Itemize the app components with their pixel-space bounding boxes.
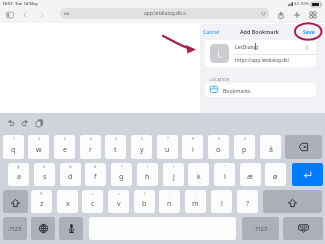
staticText: .?123 <box>254 225 268 232</box>
button[interactable]: æ <box>240 163 261 186</box>
button[interactable]: Bookmarks <box>205 83 316 97</box>
button[interactable]: Undo <box>8 120 15 126</box>
button[interactable]: Cancel <box>203 28 220 35</box>
staticText: 0 <box>244 137 246 141</box>
staticText: = <box>118 192 120 196</box>
staticText: l <box>224 172 226 182</box>
button[interactable]: % <box>31 190 52 213</box>
button[interactable]: Redo <box>21 120 28 126</box>
staticText: * <box>121 165 123 169</box>
staticText: n <box>167 199 172 209</box>
button[interactable]: Sidebar <box>6 11 14 19</box>
staticText: f <box>94 172 97 182</box>
staticText: 4G <box>294 1 300 7</box>
button[interactable]: 7 <box>157 135 178 159</box>
button[interactable]: Shift <box>263 190 322 213</box>
staticText: 2 <box>38 137 40 141</box>
staticText: AA <box>64 11 70 17</box>
staticText: @ <box>17 165 20 169</box>
staticText: 18:57 <box>2 1 13 7</box>
button[interactable]: Language <box>31 217 55 240</box>
staticText: d <box>68 172 73 182</box>
button[interactable]: ) <box>163 163 184 186</box>
staticText: % <box>40 192 43 196</box>
button[interactable]: .?123 <box>242 217 279 240</box>
staticText: . <box>247 192 248 196</box>
staticText: æ <box>247 172 254 182</box>
button[interactable]: 1 <box>3 135 24 159</box>
button[interactable]: 6 <box>131 135 152 159</box>
button[interactable]: 5 <box>105 135 126 159</box>
staticText: r <box>89 145 92 155</box>
staticText: + <box>92 192 94 196</box>
staticText: 89% <box>301 1 310 7</box>
button[interactable]: @ <box>8 163 29 186</box>
button[interactable]: " <box>214 163 235 186</box>
staticText: a <box>17 172 21 182</box>
button[interactable]: Dictation <box>59 217 83 240</box>
staticText: c <box>91 199 95 209</box>
button[interactable]: / <box>134 190 155 213</box>
button[interactable]: 9 <box>208 135 229 159</box>
staticText: & <box>94 165 97 169</box>
staticText: LOCATION <box>210 77 230 82</box>
button[interactable]: 3 <box>54 135 75 159</box>
button[interactable]: & <box>85 163 106 186</box>
staticText: ' <box>198 165 199 169</box>
button[interactable]: * <box>111 163 132 186</box>
button[interactable]: , <box>211 190 232 213</box>
button[interactable]: ø <box>265 163 286 186</box>
button[interactable]: . <box>237 190 258 213</box>
button[interactable]: # <box>34 163 55 186</box>
button[interactable]: ; <box>159 190 180 213</box>
staticText: i <box>192 145 194 155</box>
button[interactable]: ( <box>137 163 158 186</box>
button[interactable]: Tabs <box>309 11 317 19</box>
button[interactable]: 2 <box>28 135 49 159</box>
staticText: 1 <box>13 137 15 141</box>
button[interactable]: 0 <box>234 135 255 159</box>
button[interactable]: Backspace <box>285 135 322 159</box>
button[interactable]: Save <box>303 28 315 35</box>
button[interactable]: + <box>82 190 103 213</box>
staticText: h <box>145 172 150 182</box>
button[interactable]: kr <box>60 163 81 186</box>
button[interactable]: Return <box>292 163 323 186</box>
button[interactable]: Forward <box>38 11 46 19</box>
staticText: # <box>43 165 46 169</box>
staticText: ? <box>246 199 250 209</box>
staticText: ) <box>173 165 174 169</box>
button[interactable]: New Tab <box>293 11 301 19</box>
staticText: b <box>142 199 147 209</box>
button[interactable]: Paste <box>36 119 43 127</box>
button[interactable]: ' <box>188 163 209 186</box>
staticText: y <box>140 145 144 155</box>
staticText: Add Bookmark <box>240 28 279 35</box>
staticText: x <box>66 199 70 209</box>
staticText: ø <box>273 172 278 182</box>
button[interactable]: - <box>57 190 78 213</box>
button[interactable]: .?123 <box>3 217 27 240</box>
button[interactable]: 8 <box>182 135 203 159</box>
staticText: ! <box>221 199 223 209</box>
button[interactable]: Back <box>21 11 29 19</box>
button[interactable]: ´ <box>260 135 281 159</box>
staticText: : <box>195 192 196 196</box>
button[interactable]: Hide Keyboard <box>283 217 323 240</box>
button[interactable]: : <box>185 190 206 213</box>
button[interactable]: AA <box>60 8 269 19</box>
staticText: kr <box>69 165 73 169</box>
staticText: w <box>36 145 42 155</box>
staticText: 9 <box>218 137 220 141</box>
staticText: m <box>192 199 199 209</box>
button[interactable]: 4 <box>80 135 101 159</box>
staticText: , <box>221 192 222 196</box>
staticText: ´ <box>270 137 271 141</box>
button[interactable]: Shift <box>3 190 28 213</box>
staticText: L <box>217 46 223 61</box>
button[interactable]: = <box>108 190 129 213</box>
staticText: LetDialog <box>235 43 259 50</box>
staticText: u <box>165 145 170 155</box>
button[interactable]: Share <box>277 11 285 19</box>
